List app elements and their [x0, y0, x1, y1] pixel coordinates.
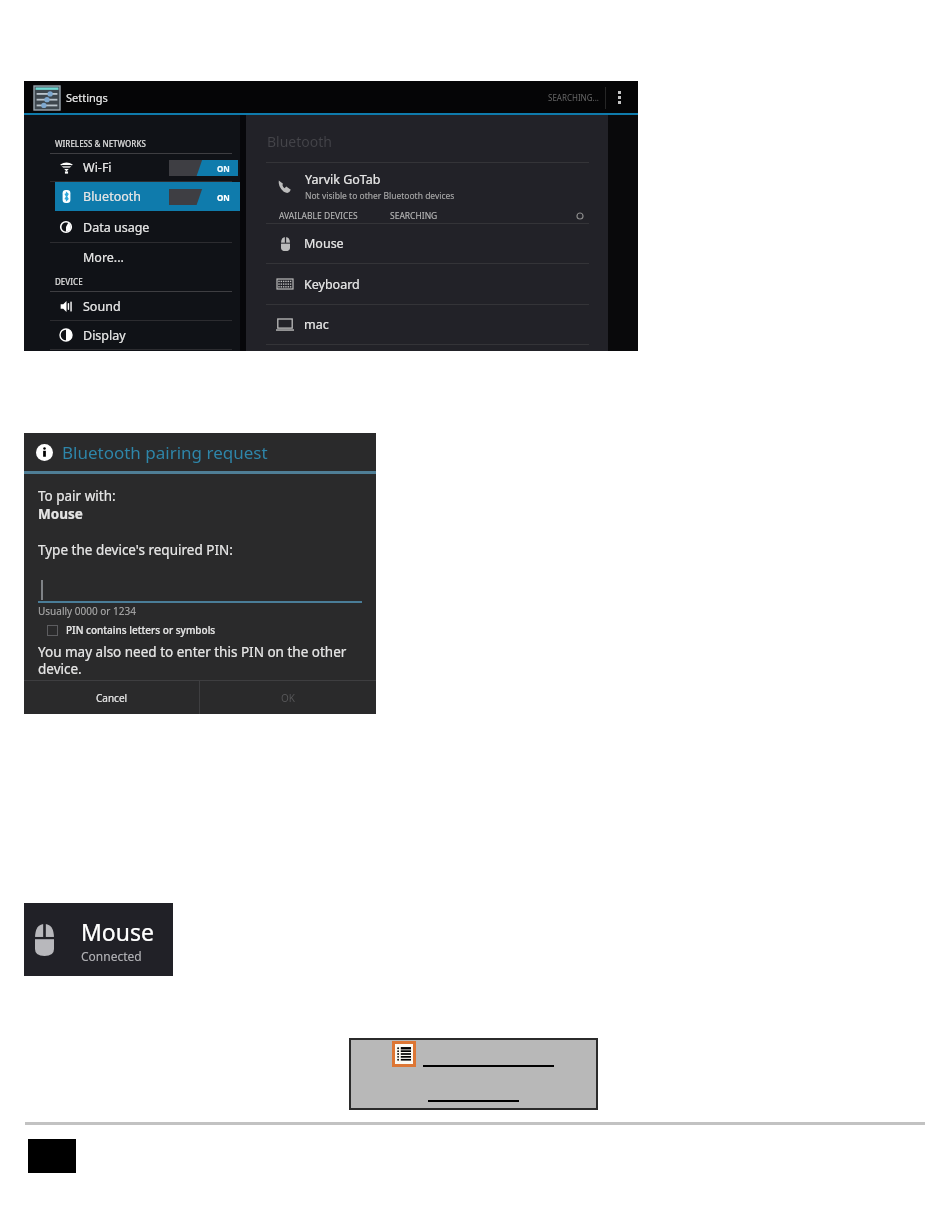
staticText: To pair with: — [38, 487, 116, 505]
staticText: Bluetooth — [267, 132, 332, 151]
staticText: WIRELESS & NETWORKS — [55, 138, 146, 149]
button[interactable]: Wi-Fi — [55, 154, 240, 181]
staticText: Display — [83, 327, 126, 344]
button[interactable]: Yarvik GoTab — [246, 163, 608, 209]
staticText: Usually 0000 or 1234 — [38, 604, 136, 618]
staticText: ON — [217, 192, 230, 203]
staticText: SEARCHING... — [548, 92, 599, 103]
button[interactable]: More options — [606, 81, 632, 114]
staticText: Mouse — [81, 916, 154, 947]
staticText: Mouse — [304, 235, 344, 252]
button[interactable]: Display — [55, 321, 240, 349]
staticText: Yarvik GoTab — [305, 171, 381, 188]
staticText: mac — [304, 316, 329, 333]
staticText: Mouse — [38, 505, 83, 523]
staticText: Wi-Fi — [83, 159, 112, 176]
button[interactable]: Mouse — [246, 224, 608, 263]
staticText: Bluetooth — [83, 188, 142, 205]
button[interactable]: Data usage — [55, 212, 240, 242]
staticText: Type the device's required PIN: — [38, 541, 233, 559]
button[interactable]: Bluetooth — [55, 182, 240, 211]
button[interactable] — [38, 579, 362, 603]
button[interactable]: Keyboard — [246, 264, 608, 304]
staticText: SEARCHING — [390, 210, 438, 222]
button[interactable]: Settings — [24, 81, 116, 114]
staticText: AVAILABLE DEVICES — [279, 210, 358, 222]
staticText: Cancel — [96, 691, 128, 705]
button[interactable]: Mouse — [24, 903, 173, 976]
staticText: More... — [83, 249, 124, 266]
staticText: Keyboard — [304, 276, 360, 293]
staticText: Sound — [83, 298, 121, 315]
button[interactable]: Cancel — [24, 681, 199, 714]
button[interactable]: More... — [55, 243, 240, 271]
staticText: Data usage — [83, 219, 150, 236]
staticText: Not visible to other Bluetooth devices — [305, 190, 455, 202]
staticText: Settings — [66, 90, 108, 105]
staticText: Connected — [81, 948, 142, 964]
button[interactable]: Sound — [55, 292, 240, 320]
staticText: OK — [281, 691, 295, 705]
staticText: DEVICE — [55, 276, 83, 287]
staticText: PIN contains letters or symbols — [66, 623, 216, 637]
staticText: You may also need to enter this PIN on t… — [38, 643, 362, 678]
button[interactable]: mac — [246, 305, 608, 344]
button[interactable]: PIN contains letters or symbols — [47, 623, 216, 637]
staticText: Bluetooth pairing request — [62, 441, 268, 464]
staticText: ON — [217, 163, 230, 174]
